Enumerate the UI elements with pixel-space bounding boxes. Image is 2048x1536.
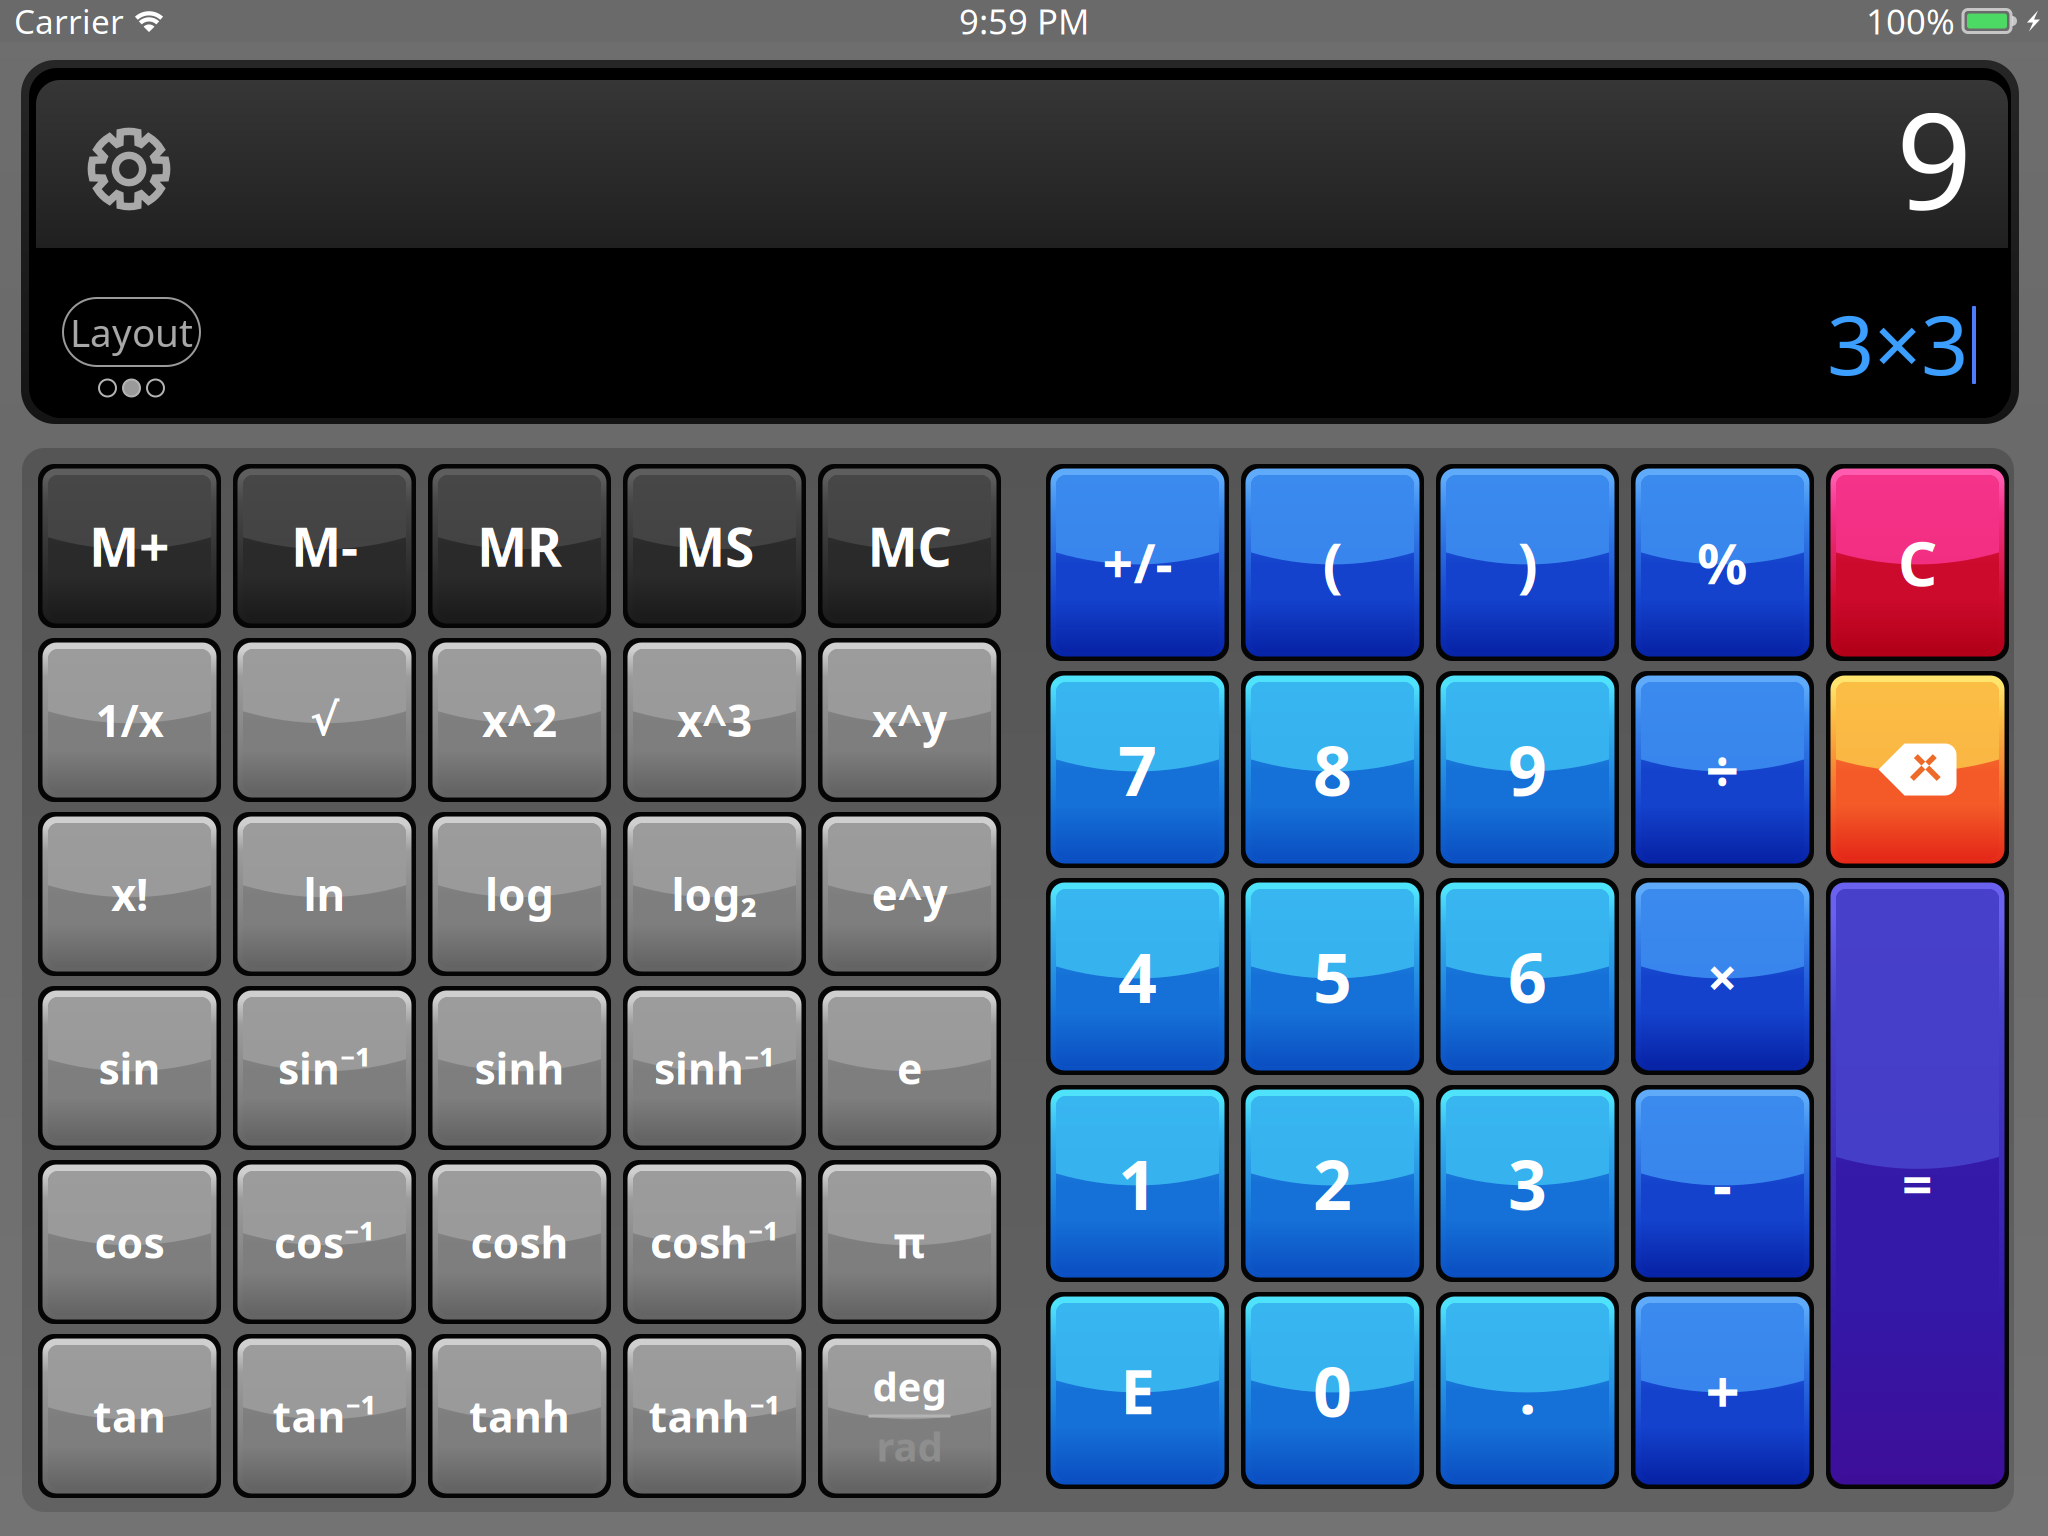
staticText: 6 [1508, 931, 1547, 1022]
button[interactable]: 8 [1241, 671, 1424, 868]
button[interactable]: MC [818, 464, 1001, 628]
button[interactable]: 2 [1241, 1085, 1424, 1282]
button[interactable]: 7 [1046, 671, 1229, 868]
button[interactable]: Delete [1826, 671, 2009, 868]
button[interactable]: e^y [818, 812, 1001, 976]
button[interactable]: x! [38, 812, 221, 976]
button[interactable]: 9 [1436, 671, 1619, 868]
staticText: 1 [1118, 1138, 1157, 1229]
button[interactable]: M+ [38, 464, 221, 628]
button[interactable]: π [818, 1160, 1001, 1324]
staticText: 5 [1313, 931, 1352, 1022]
button[interactable]: log [428, 812, 611, 976]
button[interactable]: tan [38, 1334, 221, 1498]
staticText: M+ [89, 511, 170, 581]
staticText: cos⁻¹ [274, 1214, 375, 1270]
button[interactable]: 5 [1241, 878, 1424, 1075]
staticText: 9 [1508, 724, 1547, 815]
button[interactable]: 1 [1046, 1085, 1229, 1282]
staticText: +/- [1102, 527, 1172, 598]
button[interactable]: ln [233, 812, 416, 976]
staticText: cosh⁻¹ [650, 1214, 779, 1270]
staticText: 9 [1896, 69, 1972, 247]
staticText: = [1902, 1148, 1933, 1219]
staticText: x! [111, 865, 148, 923]
button[interactable]: - [1631, 1085, 1814, 1282]
button[interactable]: deg [818, 1334, 1001, 1498]
staticText: × [1707, 941, 1738, 1012]
button[interactable]: E [1046, 1292, 1229, 1489]
staticText: ÷ [1705, 730, 1739, 808]
staticText: √ [310, 695, 339, 745]
staticText: Layout [70, 306, 193, 358]
button[interactable]: 4 [1046, 878, 1229, 1075]
button[interactable]: sin⁻¹ [233, 986, 416, 1150]
staticText: 8 [1313, 724, 1352, 815]
staticText: E [1120, 1350, 1154, 1431]
staticText: 3×3 [1827, 288, 1968, 398]
button[interactable]: cosh [428, 1160, 611, 1324]
staticText: cos [94, 1214, 164, 1270]
button[interactable]: cosh⁻¹ [623, 1160, 806, 1324]
staticText: sinh⁻¹ [654, 1040, 775, 1096]
button[interactable]: = [1826, 878, 2009, 1489]
button[interactable]: 1/x [38, 638, 221, 802]
staticText: ln [303, 865, 345, 923]
staticText: 9:59 PM [959, 0, 1089, 44]
staticText: x^y [872, 691, 947, 749]
button[interactable]: e [818, 986, 1001, 1150]
button[interactable]: × [1631, 878, 1814, 1075]
button[interactable]: tanh⁻¹ [623, 1334, 806, 1498]
button[interactable]: ÷ [1631, 671, 1814, 868]
staticText: MR [477, 511, 562, 581]
button[interactable]: MR [428, 464, 611, 628]
button[interactable]: √ [233, 638, 416, 802]
staticText: ) [1517, 523, 1537, 602]
button[interactable]: MS [623, 464, 806, 628]
button[interactable]: tanh [428, 1334, 611, 1498]
button[interactable]: sinh⁻¹ [623, 986, 806, 1150]
button[interactable]: cos⁻¹ [233, 1160, 416, 1324]
staticText: e^y [871, 865, 947, 923]
staticText: 0 [1313, 1345, 1352, 1436]
staticText: tanh⁻¹ [648, 1388, 780, 1444]
staticText: π [893, 1214, 925, 1270]
button[interactable]: + [1631, 1292, 1814, 1489]
staticText: + [1705, 1351, 1739, 1430]
staticText: MS [675, 511, 754, 581]
staticText: - [1713, 1144, 1732, 1222]
button[interactable]: x^3 [623, 638, 806, 802]
button[interactable]: ) [1436, 464, 1619, 661]
button[interactable]: % [1631, 464, 1814, 661]
button[interactable]: 3 [1436, 1085, 1619, 1282]
button[interactable]: Layout [63, 298, 200, 366]
button[interactable]: x^2 [428, 638, 611, 802]
staticText: 4 [1118, 931, 1157, 1022]
staticText: log₂ [671, 865, 757, 923]
button[interactable]: M- [233, 464, 416, 628]
staticText: deg [872, 1359, 946, 1412]
button[interactable]: ( [1241, 464, 1424, 661]
button[interactable]: C [1826, 464, 2009, 661]
staticText: sin⁻¹ [278, 1040, 371, 1096]
button[interactable]: Settings [62, 80, 196, 258]
staticText: Carrier [14, 0, 124, 43]
button[interactable]: cos [38, 1160, 221, 1324]
button[interactable]: 0 [1241, 1292, 1424, 1489]
staticText: 7 [1118, 724, 1157, 815]
button[interactable]: tan⁻¹ [233, 1334, 416, 1498]
button[interactable]: x^y [818, 638, 1001, 802]
staticText: 2 [1313, 1138, 1352, 1229]
button[interactable]: 6 [1436, 878, 1619, 1075]
staticText: 3 [1508, 1138, 1547, 1229]
staticText: x^2 [482, 691, 557, 749]
button[interactable]: log₂ [623, 812, 806, 976]
staticText: log [485, 865, 554, 923]
button[interactable]: sinh [428, 986, 611, 1150]
staticText: sin [98, 1040, 160, 1096]
button[interactable]: sin [38, 986, 221, 1150]
staticText: ( [1322, 523, 1342, 602]
staticText: x^3 [677, 691, 752, 749]
button[interactable]: +/- [1046, 464, 1229, 661]
button[interactable]: . [1436, 1292, 1619, 1489]
